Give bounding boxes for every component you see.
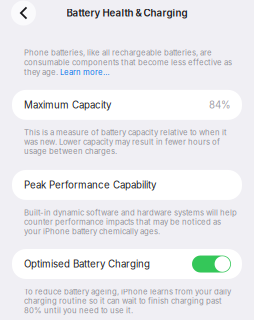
staticText: Maximum Capacity	[24, 99, 111, 111]
staticText: they age.	[24, 67, 60, 77]
staticText: Optimised Battery Charging	[24, 258, 150, 270]
staticText: Battery Health & Charging	[66, 7, 187, 19]
button[interactable]: Optimised Battery Charging	[12, 249, 242, 279]
staticText: Peak Performance Capability	[24, 179, 156, 191]
staticText: This is a measure of battery capacity re…	[24, 128, 227, 156]
staticText: To reduce battery ageing, iPhone learns …	[24, 287, 231, 315]
button[interactable]: Maximum Capacity	[12, 90, 242, 120]
button[interactable]: Peak Performance Capability	[12, 170, 242, 200]
staticText: Learn more…	[60, 67, 110, 77]
staticText: Phone batteries, like all rechargeable b…	[24, 48, 212, 57]
button[interactable]: Learn more…	[60, 67, 110, 77]
staticText: 84%	[209, 99, 231, 111]
staticText: Built-in dynamic software and hardware s…	[24, 208, 237, 236]
staticText: consumable components that become less e…	[24, 58, 232, 67]
button[interactable]: Back	[11, 0, 36, 25]
